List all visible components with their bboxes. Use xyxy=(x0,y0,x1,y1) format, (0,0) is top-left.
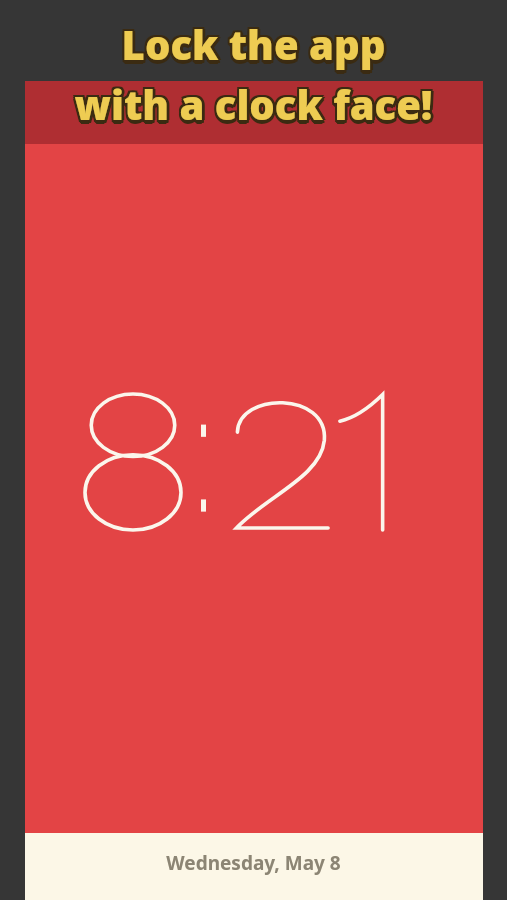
staticText: Lock the app xyxy=(2,19,507,73)
staticText: with a clock face! xyxy=(2,80,507,134)
staticText: with a clock face! xyxy=(0,79,505,133)
staticText: with a clock face! xyxy=(2,75,507,129)
staticText: with a clock face! xyxy=(0,80,506,134)
staticText: Lock the app xyxy=(0,15,505,69)
staticText: with a clock face! xyxy=(0,75,507,129)
staticText: Lock the app xyxy=(0,17,507,71)
staticText: with a clock face! xyxy=(0,75,505,129)
staticText: with a clock face! xyxy=(3,77,507,131)
staticText: with a clock face! xyxy=(0,80,507,134)
staticText: with a clock face! xyxy=(0,81,507,135)
staticText: Lock the app xyxy=(0,20,507,74)
staticText: Lock the app xyxy=(0,20,506,74)
button[interactable]: Wednesday, May 8 xyxy=(0,850,507,876)
staticText: Lock the app xyxy=(0,21,507,75)
staticText: Lock the app xyxy=(0,17,505,71)
staticText: Lock the app xyxy=(0,15,507,69)
staticText: Lock the app xyxy=(2,15,507,69)
button[interactable]: Clock face lock screen xyxy=(0,0,507,900)
staticText: Wednesday, May 8 xyxy=(166,850,341,876)
staticText: Lock the app xyxy=(2,20,507,74)
staticText: with a clock face! xyxy=(0,77,507,131)
staticText: with a clock face! xyxy=(0,77,505,131)
staticText: with a clock face! xyxy=(2,79,507,133)
staticText: Lock the app xyxy=(0,19,505,73)
staticText: Lock the app xyxy=(3,17,507,71)
